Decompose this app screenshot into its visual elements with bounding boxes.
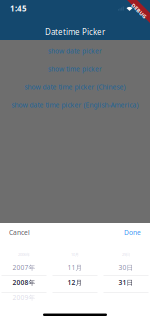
staticText: Cancel	[9, 228, 30, 237]
button[interactable]: show date picker	[0, 42, 150, 60]
staticText: 2009年	[12, 293, 35, 302]
staticText: 30日	[118, 263, 133, 272]
button[interactable]: show date time picker (Chinese)	[0, 78, 150, 96]
button[interactable]: show date time picker (English-America)	[0, 96, 150, 114]
button[interactable]: Cancel	[0, 223, 39, 242]
staticText: 29日	[122, 252, 130, 257]
staticText: 1:45	[10, 3, 27, 14]
staticText: 11月	[67, 263, 82, 272]
staticText: Done	[124, 228, 141, 237]
staticText: show date time picker (Chinese)	[24, 83, 125, 91]
staticText: 2008年	[12, 278, 35, 287]
staticText: show date picker	[48, 47, 102, 55]
staticText: show time picker	[48, 65, 102, 73]
staticText: 10月	[71, 252, 79, 257]
staticText: show date time picker (English-America)	[11, 101, 138, 109]
staticText: Datetime Picker	[45, 27, 105, 37]
button[interactable]: show time picker	[0, 60, 150, 78]
staticText: 12月	[67, 278, 82, 287]
staticText: 2006年	[18, 252, 30, 257]
staticText: DEBUG	[129, 7, 148, 15]
staticText: 31日	[118, 278, 133, 287]
staticText: 2007年	[12, 263, 35, 272]
button[interactable]: Done	[115, 223, 150, 242]
